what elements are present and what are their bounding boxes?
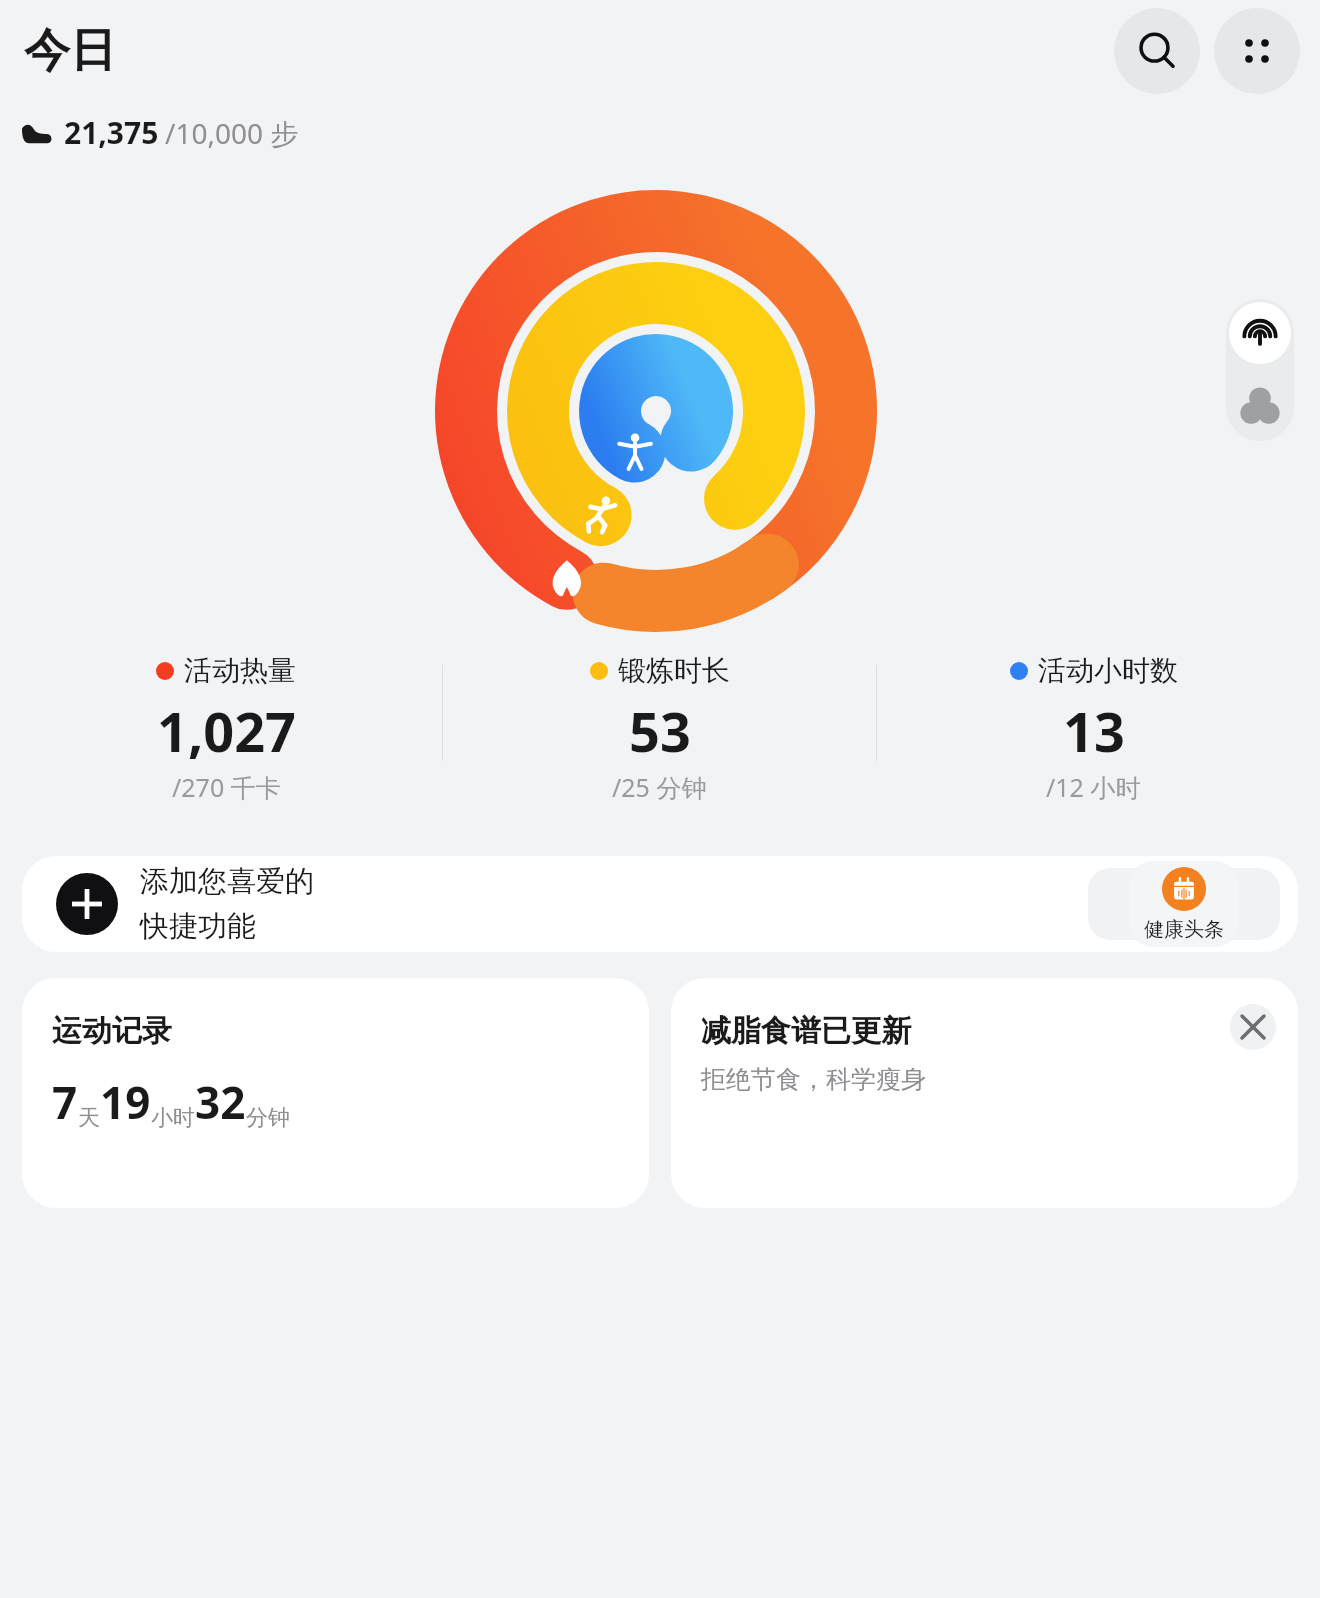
button[interactable] — [0, 153, 1320, 653]
staticText: /12 小时 — [1046, 770, 1141, 804]
staticText: /270 千卡 — [172, 770, 281, 804]
button[interactable]: Search — [1114, 8, 1200, 94]
button[interactable]: Close — [1230, 1004, 1276, 1050]
staticText: 19 — [100, 1072, 151, 1132]
staticText: /10,000 步 — [165, 114, 299, 152]
staticText: 21,375 — [64, 112, 159, 153]
staticText: 活动小时数 — [1038, 653, 1178, 688]
staticText: 快捷功能 — [140, 908, 256, 945]
button[interactable]: Share and more — [1226, 299, 1294, 441]
staticText: 分钟 — [246, 1104, 290, 1132]
staticText: 天 — [78, 1104, 100, 1132]
button[interactable]: More options — [1214, 8, 1300, 94]
staticText: 减脂食谱已更新 — [701, 1012, 911, 1050]
staticText: 13 — [1063, 694, 1125, 768]
staticText: /25 分钟 — [612, 770, 707, 804]
button[interactable]: 减脂食谱已更新 — [671, 978, 1298, 1208]
staticText: 1,027 — [157, 694, 296, 768]
staticText: 7 — [52, 1072, 78, 1132]
button[interactable]: 活动热量 — [10, 653, 442, 804]
staticText: 添加您喜爱的 — [140, 863, 314, 900]
button[interactable]: 健康头条 — [1129, 861, 1239, 947]
button[interactable]: 活动小时数 — [877, 653, 1310, 804]
staticText: 53 — [629, 694, 691, 768]
button[interactable]: 添加您喜爱的 — [22, 856, 1298, 952]
staticText: 32 — [195, 1072, 246, 1132]
button[interactable]: 锻炼时长 — [443, 653, 876, 804]
staticText: 小时 — [151, 1104, 195, 1132]
staticText: 拒绝节食，科学瘦身 — [701, 1064, 926, 1095]
button[interactable]: 运动记录 — [22, 978, 649, 1208]
staticText: 健康头条 — [1144, 917, 1224, 942]
button[interactable]: 21,375 — [22, 112, 299, 153]
staticText: 锻炼时长 — [618, 653, 730, 688]
staticText: 运动记录 — [52, 1012, 172, 1050]
staticText: 活动热量 — [184, 653, 296, 688]
staticText: 今日 — [24, 22, 116, 80]
